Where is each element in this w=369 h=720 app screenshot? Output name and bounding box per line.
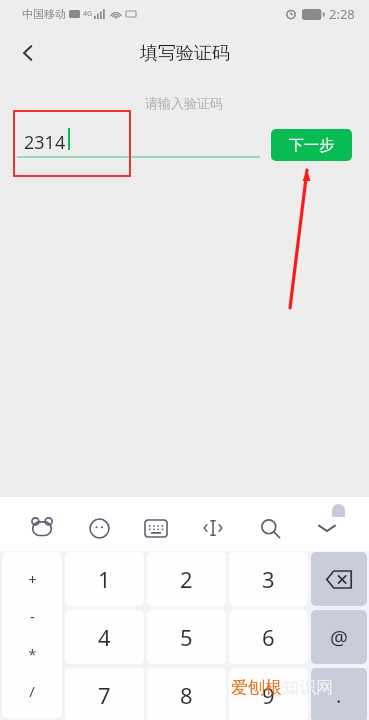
button[interactable]: Emoji [84,513,114,543]
staticText: 8 [180,680,193,710]
button[interactable]: 下一步 [271,129,352,161]
button[interactable]: 1 [65,552,144,606]
staticText: 5 [180,622,193,652]
button[interactable]: Hide keyboard [312,513,342,543]
staticText: 7 [98,680,111,710]
staticText: 3 [262,564,275,594]
staticText: + [28,569,37,589]
staticText: 6 [262,622,275,652]
staticText: 2314 [24,130,66,155]
staticText: * [28,644,37,664]
button[interactable]: 7 [65,668,144,720]
button[interactable]: 5 [147,610,226,664]
button[interactable]: 8 [147,668,226,720]
button[interactable]: Cursor control [198,513,228,543]
button[interactable]: 4 [65,610,144,664]
staticText: 请输入验证码 [145,95,223,111]
staticText: 4 [98,622,111,652]
staticText: 填写验证码 [140,42,230,65]
staticText: 2 [180,564,193,594]
staticText: - [30,606,35,626]
button[interactable]: . [311,668,367,720]
staticText: 知识网 [282,677,333,698]
staticText: 爱刨根 [231,677,282,698]
button[interactable]: 9 [229,668,308,720]
button[interactable]: 6 [229,610,308,664]
button[interactable]: 3 [229,552,308,606]
staticText: . [336,682,342,709]
staticText: 中国移动 [22,7,66,21]
button[interactable]: 2 [147,552,226,606]
button[interactable]: Voice input [27,513,57,543]
staticText: 4G [83,9,93,19]
button[interactable]: Search [255,513,285,543]
staticText: @ [330,624,348,651]
staticText: 2:28 [329,5,355,23]
button[interactable]: @ [311,610,367,664]
button[interactable]: Back [8,33,48,73]
staticText: 1 [98,564,111,594]
staticText: 9 [262,680,275,710]
button[interactable]: + [2,552,62,718]
staticText: / [29,681,35,701]
staticText: 下一步 [289,136,334,155]
button[interactable]: Delete [311,552,367,606]
button[interactable]: Keyboard layout [141,513,171,543]
